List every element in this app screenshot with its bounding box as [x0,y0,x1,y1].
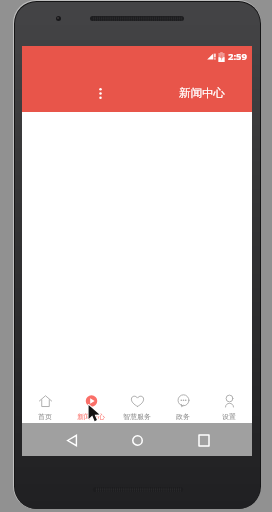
button[interactable]: 智慧服务 [114,390,160,423]
button[interactable]: Recent apps [193,429,215,451]
staticText: 2:59 [228,50,247,63]
staticText: 新闻中心 [77,412,105,421]
staticText: 新闻中心 [179,86,225,100]
staticText: 设置 [222,412,236,421]
button[interactable]: More options [84,77,116,109]
button[interactable]: 新闻中心 [68,390,114,423]
staticText: 智慧服务 [123,412,151,421]
button[interactable]: Home [126,429,148,451]
staticText: 首页 [38,412,52,421]
button[interactable]: 设置 [206,390,252,423]
staticText: 政务 [176,412,190,421]
button[interactable]: 首页 [22,390,68,423]
button[interactable]: Back [61,429,83,451]
button[interactable]: 政务 [160,390,206,423]
